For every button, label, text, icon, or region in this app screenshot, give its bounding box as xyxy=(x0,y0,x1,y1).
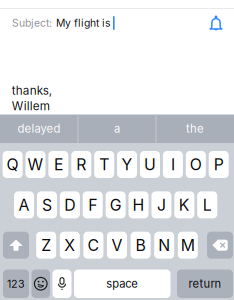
staticText: H xyxy=(133,195,145,214)
staticText: G xyxy=(110,195,122,214)
staticText: thanks, xyxy=(12,83,52,98)
button[interactable]: delayed xyxy=(0,114,77,143)
staticText: C xyxy=(87,236,99,255)
staticText: S xyxy=(42,195,52,214)
staticText: N xyxy=(158,236,170,255)
staticText: V xyxy=(111,236,122,255)
staticText: E xyxy=(54,155,63,174)
button[interactable]: F xyxy=(83,191,103,218)
staticText: D xyxy=(64,195,75,214)
button[interactable]: O xyxy=(186,151,206,178)
button[interactable]: Emoji xyxy=(31,269,50,298)
button[interactable]: G xyxy=(106,191,126,218)
staticText: J xyxy=(157,195,166,214)
button[interactable]: R xyxy=(71,151,91,178)
staticText: space xyxy=(106,277,138,291)
staticText: Y xyxy=(122,155,133,174)
button[interactable]: V xyxy=(107,232,127,259)
staticText: U xyxy=(144,155,156,174)
button[interactable]: X xyxy=(60,232,80,259)
staticText: A xyxy=(19,195,30,214)
button[interactable]: the xyxy=(156,114,233,143)
staticText: B xyxy=(136,236,146,255)
button[interactable]: Dictation xyxy=(52,269,71,298)
button[interactable]: D xyxy=(60,191,80,218)
button[interactable]: L xyxy=(197,191,217,218)
staticText: K xyxy=(179,195,190,214)
button[interactable]: B xyxy=(131,232,151,259)
button[interactable]: Shift xyxy=(3,232,29,259)
button[interactable]: C xyxy=(83,232,103,259)
button[interactable]: Z xyxy=(36,232,56,259)
staticText: P xyxy=(214,155,224,174)
button[interactable]: S xyxy=(37,191,57,218)
button[interactable]: E xyxy=(48,151,68,178)
staticText: F xyxy=(88,195,97,214)
button[interactable]: W xyxy=(25,151,45,178)
button[interactable]: Delete xyxy=(207,232,233,259)
staticText: W xyxy=(27,155,43,174)
button[interactable]: P xyxy=(209,151,229,178)
staticText: delayed xyxy=(17,122,60,136)
staticText: Subject: xyxy=(12,17,52,29)
staticText: R xyxy=(76,155,86,174)
staticText: a xyxy=(114,122,120,136)
staticText: Willem xyxy=(12,99,50,113)
staticText: Q xyxy=(7,155,19,174)
button[interactable]: M xyxy=(178,232,198,259)
button[interactable]: space xyxy=(74,269,170,298)
button[interactable]: K xyxy=(174,191,194,218)
button[interactable]: A xyxy=(14,191,34,218)
staticText: X xyxy=(64,236,75,255)
staticText: Z xyxy=(41,236,51,255)
staticText: O xyxy=(190,155,202,174)
staticText: T xyxy=(99,155,109,174)
button[interactable]: N xyxy=(154,232,174,259)
button[interactable]: a xyxy=(78,114,155,143)
staticText: return xyxy=(188,277,221,291)
button[interactable]: I xyxy=(163,151,183,178)
staticText: the xyxy=(186,122,204,136)
button[interactable]: Y xyxy=(117,151,137,178)
staticText: M xyxy=(181,236,195,255)
button[interactable]: J xyxy=(151,191,171,218)
button[interactable]: T xyxy=(94,151,114,178)
button[interactable]: Notify me when replied xyxy=(201,8,231,38)
staticText: My flight is xyxy=(56,17,110,29)
staticText: I xyxy=(171,155,175,174)
staticText: 123 xyxy=(7,277,25,290)
button[interactable]: U xyxy=(140,151,160,178)
staticText: L xyxy=(203,195,212,214)
button[interactable]: H xyxy=(129,191,149,218)
button[interactable]: Q xyxy=(3,151,23,178)
button[interactable]: return xyxy=(177,269,233,298)
button[interactable]: 123 xyxy=(3,269,29,298)
